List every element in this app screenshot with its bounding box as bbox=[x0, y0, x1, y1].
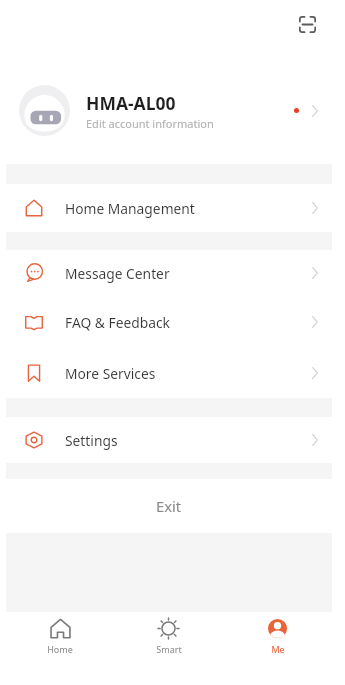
staticText: FAQ & Feedback bbox=[65, 313, 170, 332]
button[interactable]: Message Center bbox=[6, 250, 332, 296]
button[interactable]: Smart bbox=[114, 612, 223, 685]
button[interactable]: More Services bbox=[6, 348, 332, 398]
button[interactable]: Me bbox=[223, 612, 332, 685]
button[interactable]: HMA-AL00 bbox=[6, 61, 332, 160]
staticText: Message Center bbox=[65, 264, 170, 283]
button[interactable]: Home bbox=[6, 612, 114, 685]
staticText: Smart bbox=[156, 643, 182, 655]
staticText: Edit account information bbox=[86, 116, 214, 131]
staticText: Exit bbox=[156, 496, 182, 516]
button[interactable]: Exit bbox=[6, 479, 332, 533]
staticText: More Services bbox=[65, 364, 156, 383]
staticText: Home bbox=[47, 643, 73, 655]
button[interactable]: Settings bbox=[6, 417, 332, 463]
staticText: Home Management bbox=[65, 199, 195, 218]
button[interactable]: Home Management bbox=[6, 184, 332, 232]
button[interactable]: Scan QR code bbox=[293, 10, 321, 38]
staticText: Me bbox=[271, 643, 285, 655]
staticText: HMA-AL00 bbox=[86, 91, 176, 115]
staticText: Settings bbox=[65, 431, 118, 450]
button[interactable]: FAQ & Feedback bbox=[6, 296, 332, 348]
